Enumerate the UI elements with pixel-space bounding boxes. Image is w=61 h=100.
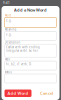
staticText: Add a New Word bbox=[14, 7, 47, 13]
staticText: e.g. bbox=[6, 19, 12, 22]
staticText: Cancel bbox=[40, 91, 53, 96]
staticText: Status bbox=[4, 70, 11, 74]
button[interactable]: Cancel bbox=[36, 89, 56, 97]
staticText: Word bbox=[4, 14, 11, 17]
staticText: 9:41 bbox=[3, 1, 10, 5]
staticText: Add Word bbox=[7, 91, 28, 96]
staticText: Meaning bbox=[4, 28, 16, 31]
staticText: hi, b2, c1 verb, D. bbox=[6, 62, 32, 66]
staticText: e.g. bbox=[6, 33, 12, 36]
staticText: Cadiar verb with ending (irregular verb)… bbox=[6, 45, 40, 53]
button[interactable]: Add Word bbox=[4, 89, 31, 97]
staticText: Tags bbox=[4, 57, 9, 61]
staticText: Description bbox=[4, 41, 20, 44]
